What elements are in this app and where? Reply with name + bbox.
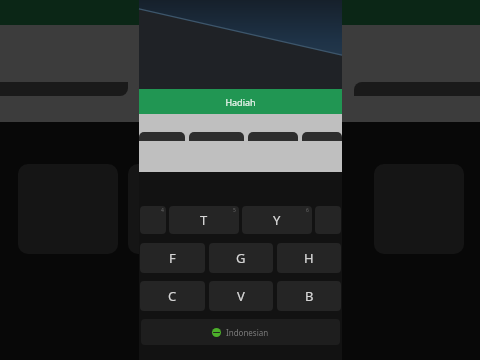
staticText: 6: [306, 207, 309, 214]
button[interactable]: T: [169, 206, 239, 234]
button[interactable]: [139, 132, 185, 141]
staticText: Y: [273, 211, 281, 229]
button[interactable]: [302, 132, 342, 141]
staticText: F: [169, 249, 176, 267]
staticText: H: [304, 249, 314, 267]
button[interactable]: V: [209, 281, 273, 311]
staticText: V: [237, 287, 245, 305]
staticText: 5: [233, 207, 236, 214]
button[interactable]: G: [209, 243, 273, 273]
button[interactable]: Hadiah: [139, 89, 342, 114]
button[interactable]: C: [140, 281, 205, 311]
staticText: 4: [161, 207, 164, 214]
button[interactable]: Key: [140, 206, 166, 234]
button[interactable]: [248, 132, 298, 141]
staticText: Indonesian: [226, 327, 269, 338]
staticText: C: [168, 287, 177, 305]
button[interactable]: Y: [242, 206, 312, 234]
staticText: Hadiah: [225, 96, 256, 108]
button[interactable]: [189, 132, 244, 141]
button[interactable]: Indonesian: [141, 319, 340, 345]
staticText: B: [305, 287, 314, 305]
button[interactable]: H: [277, 243, 341, 273]
staticText: T: [200, 211, 208, 229]
button[interactable]: B: [277, 281, 341, 311]
button[interactable]: F: [140, 243, 205, 273]
staticText: G: [236, 249, 246, 267]
